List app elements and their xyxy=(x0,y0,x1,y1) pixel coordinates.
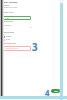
staticText: Select the key xyxy=(4,6,18,9)
button[interactable]: Email xyxy=(3,35,12,38)
staticText: Edit settings xyxy=(4,1,18,4)
staticText: Reporting xyxy=(4,31,14,34)
staticText: 3 xyxy=(32,40,38,54)
button[interactable]: Save xyxy=(51,89,60,93)
staticText: Save xyxy=(54,90,58,92)
button[interactable]: Date xyxy=(3,16,31,20)
staticText: SMS xyxy=(6,38,11,41)
staticText: Enter the URL xyxy=(5,47,19,50)
staticText: Receive URL xyxy=(4,42,17,45)
staticText: Default xyxy=(4,24,12,27)
staticText: Name xyxy=(4,4,10,7)
staticText: Email xyxy=(6,35,12,38)
staticText: Ringtone xyxy=(4,20,14,23)
staticText: Start visit xyxy=(4,11,14,14)
button[interactable]: Default xyxy=(3,24,31,29)
other: Scroll position xyxy=(60,0,63,3)
staticText: Date xyxy=(5,17,10,20)
button[interactable]: SMS xyxy=(3,38,11,41)
staticText: 4 xyxy=(45,87,50,98)
button[interactable]: Enter the URL xyxy=(3,46,31,51)
